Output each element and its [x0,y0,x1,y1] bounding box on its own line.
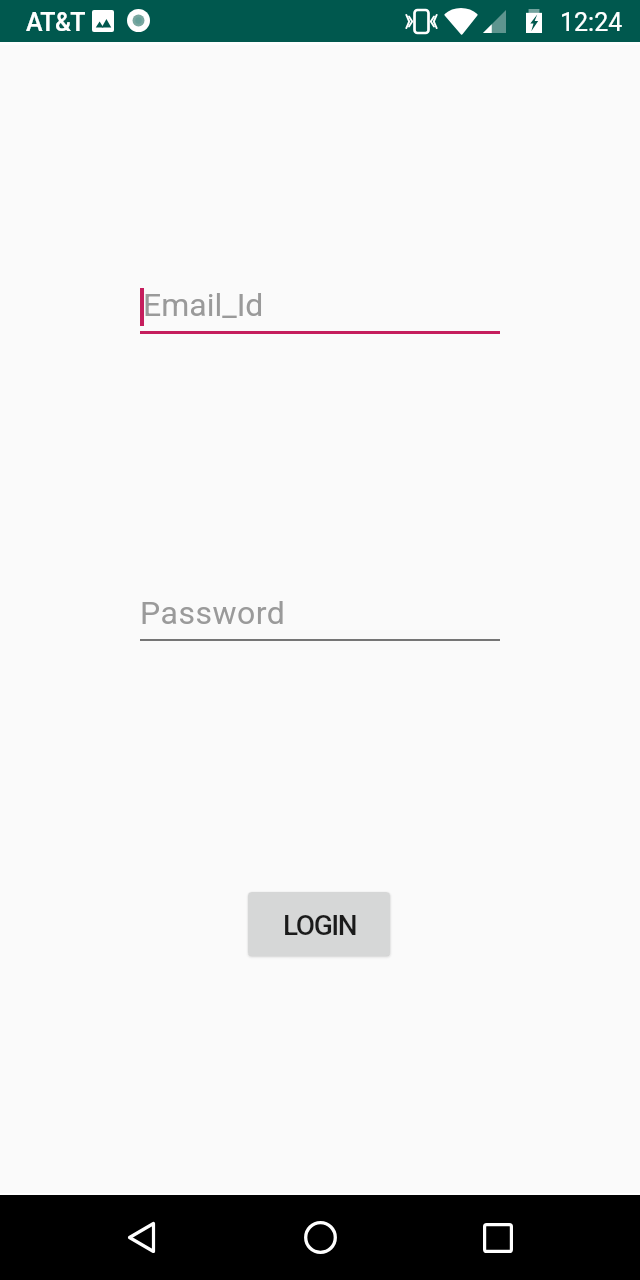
staticText: AT&T [26,8,85,37]
staticText: Email_Id [143,286,264,324]
staticText: 12:24 [560,8,623,37]
staticText: Password [140,594,286,632]
button[interactable]: Password [140,594,500,642]
button[interactable]: Email_Id [140,286,500,334]
button[interactable]: LOGIN [248,892,390,956]
button[interactable]: Recent apps [455,1195,541,1280]
button[interactable]: Home [277,1195,363,1280]
staticText: LOGIN [283,909,357,942]
button[interactable]: Back [98,1195,184,1280]
